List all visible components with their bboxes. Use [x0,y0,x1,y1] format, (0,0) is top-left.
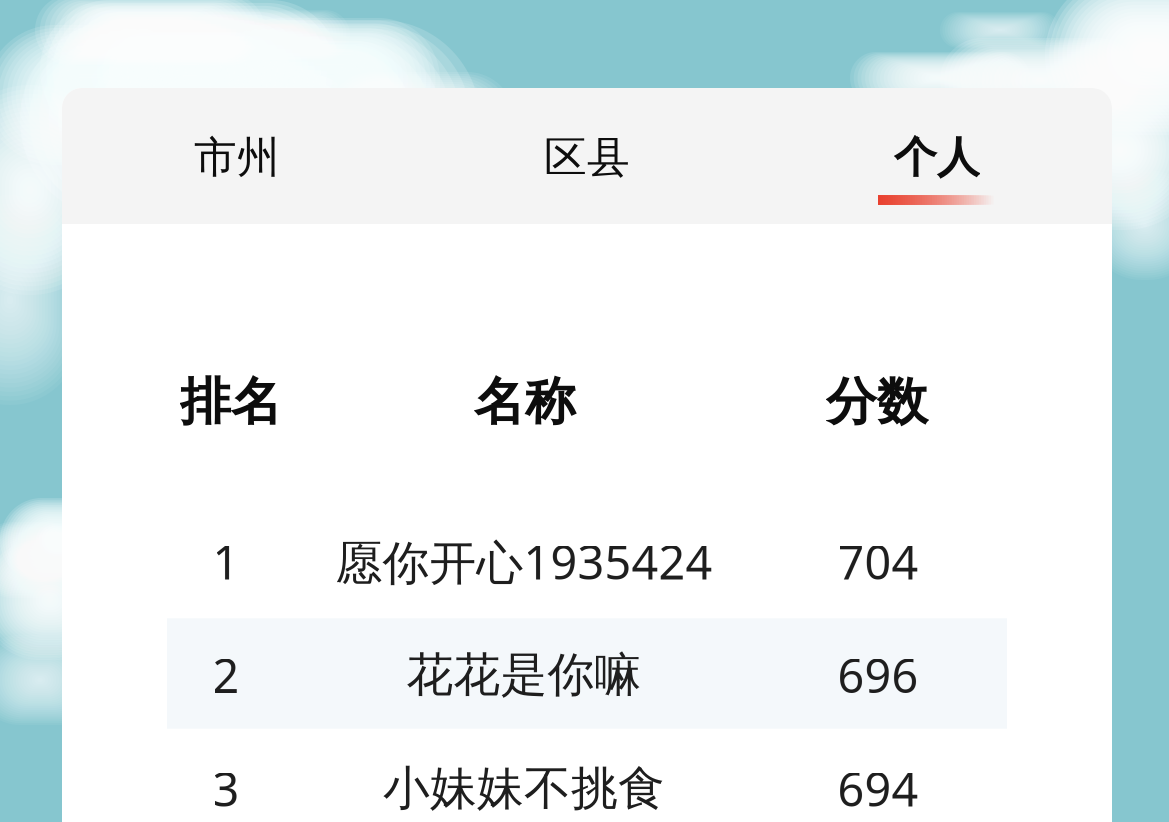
staticText: 市州 [194,131,280,184]
staticText: 花花是你嘛 [406,646,641,704]
button[interactable]: 市州 [62,88,412,224]
button[interactable]: 区县 [412,88,762,224]
staticText: 704 [837,530,918,592]
staticText: 个人 [894,131,980,184]
staticText: 排名 [180,371,282,433]
staticText: 696 [837,644,918,706]
staticText: 分数 [826,371,928,433]
staticText: 名称 [474,371,576,433]
staticText: 愿你开心1935424 [335,530,712,592]
staticText: 3 [212,757,239,819]
button[interactable]: 个人 [762,88,1112,224]
staticText: 区县 [544,131,630,184]
staticText: 1 [212,530,239,592]
staticText: 694 [837,757,918,819]
staticText: 2 [212,644,239,706]
staticText: 小妹妹不挑食 [383,760,665,817]
